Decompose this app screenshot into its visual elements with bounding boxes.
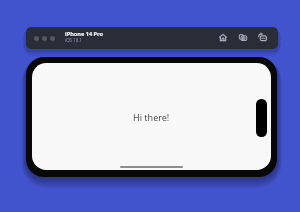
button[interactable]: Rotate <box>255 30 269 44</box>
button[interactable]: Screenshot <box>236 30 250 44</box>
button[interactable]: Home <box>216 30 230 44</box>
staticText: iOS 16.1 <box>65 37 82 43</box>
staticText: Hi there! <box>133 111 170 123</box>
staticText: iPhone 14 Pro <box>65 30 103 38</box>
